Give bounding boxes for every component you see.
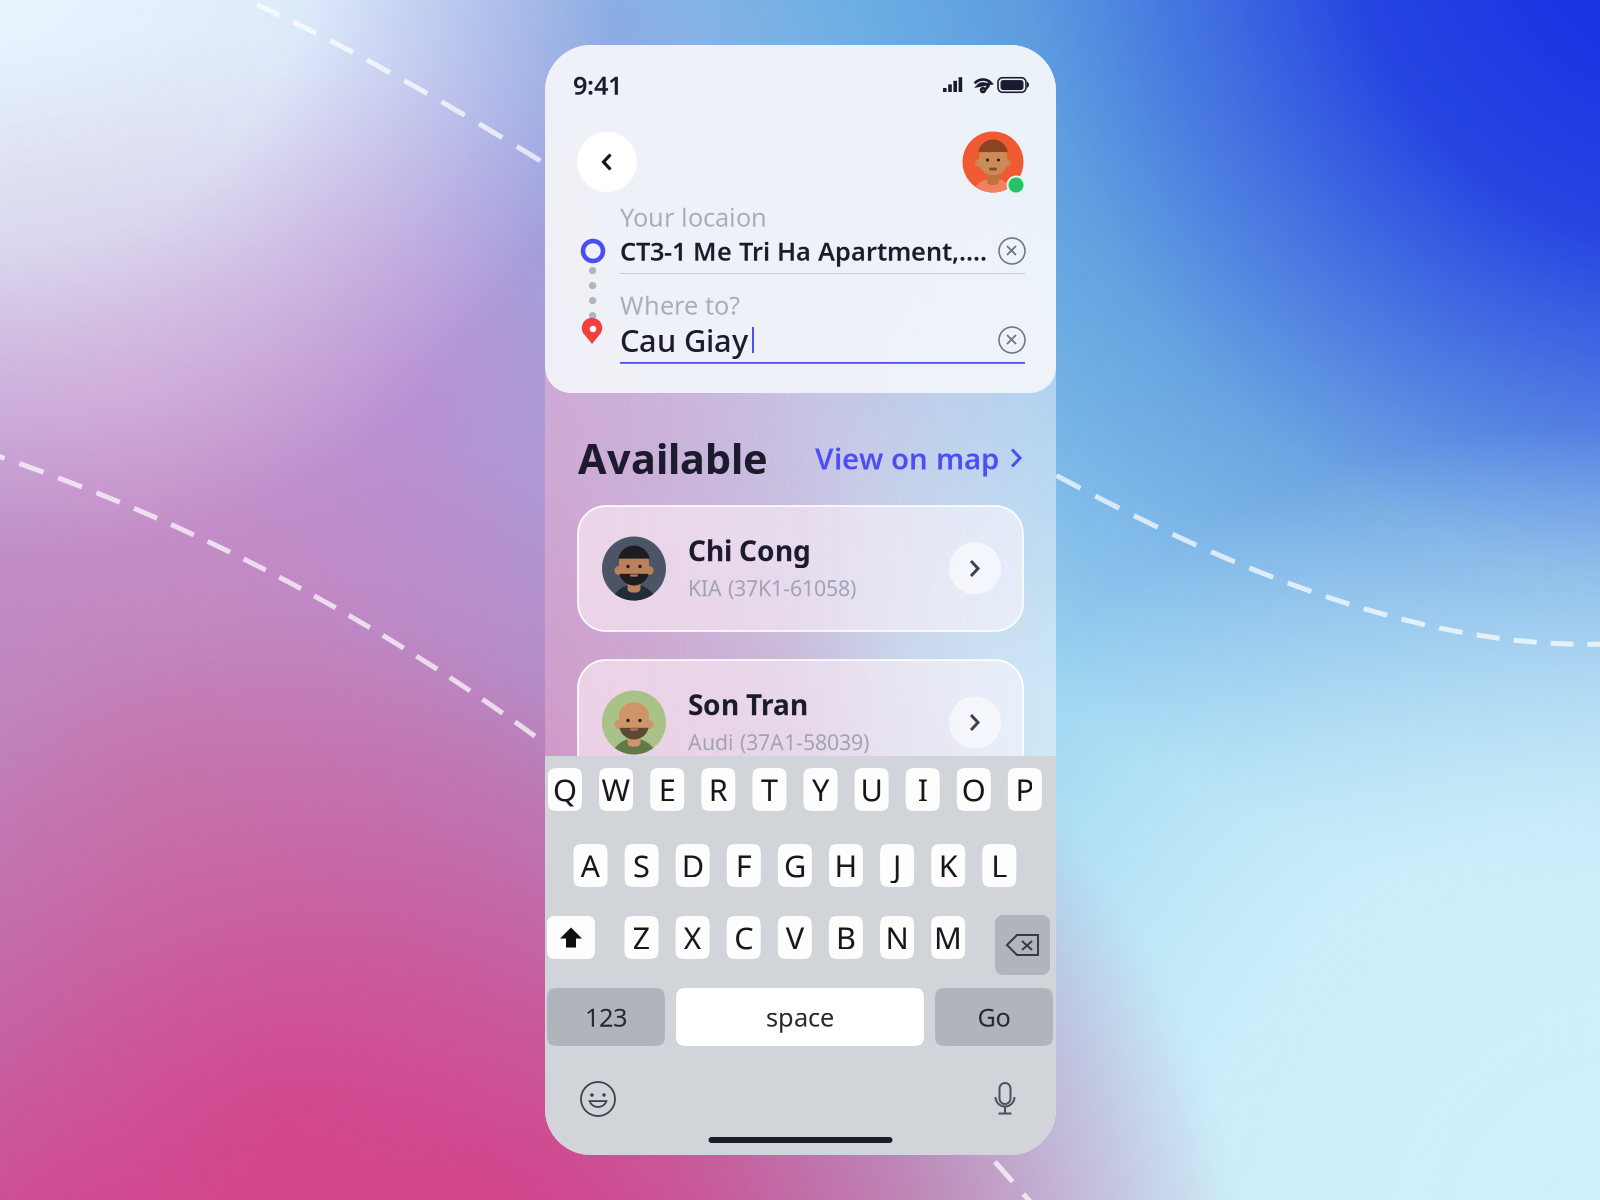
button[interactable]: T	[752, 768, 786, 811]
button[interactable]: U	[855, 768, 889, 811]
button[interactable]: L	[982, 844, 1016, 887]
staticText: 9:41	[573, 68, 622, 102]
button[interactable]: Son Tran	[578, 660, 1023, 785]
button[interactable]: D	[676, 844, 710, 887]
staticText: P	[1015, 769, 1034, 810]
button[interactable]: W	[599, 768, 633, 811]
staticText: Go	[977, 1000, 1010, 1034]
staticText: W	[602, 769, 631, 810]
button[interactable]: V	[778, 916, 812, 959]
button[interactable]: B	[829, 916, 863, 959]
staticText: Son Tran	[688, 686, 808, 723]
button[interactable]: I	[906, 768, 940, 811]
staticText: O	[962, 769, 986, 810]
staticText: N	[885, 917, 908, 958]
staticText: CT3-1 Me Tri Ha Apartment,....	[620, 234, 987, 268]
staticText: View on map	[815, 438, 999, 477]
staticText: C	[734, 917, 753, 958]
staticText: D	[682, 845, 704, 886]
staticText: A	[580, 845, 600, 886]
staticText: Y	[812, 769, 829, 810]
button[interactable]: H	[829, 844, 863, 887]
button[interactable]: 123	[547, 988, 665, 1046]
button[interactable]: S	[625, 844, 659, 887]
staticText: F	[736, 845, 752, 886]
button[interactable]: Shift	[547, 916, 595, 959]
button[interactable]: Z	[624, 916, 658, 959]
button[interactable]: E	[650, 768, 684, 811]
staticText: Your locaion	[620, 200, 767, 234]
button[interactable]: Delete	[995, 915, 1050, 975]
button[interactable]: Y	[803, 768, 837, 811]
button[interactable]: A	[573, 844, 607, 887]
button[interactable]: Profile	[962, 131, 1024, 193]
button[interactable]: K	[931, 844, 965, 887]
button[interactable]: Emoji	[581, 1082, 615, 1116]
staticText: Available	[578, 431, 768, 485]
button[interactable]: C	[727, 916, 761, 959]
staticText: R	[709, 769, 728, 810]
button[interactable]: space	[676, 988, 924, 1046]
staticText: Q	[553, 769, 577, 810]
staticText: I	[918, 769, 928, 810]
staticText: Z	[632, 917, 650, 958]
button[interactable]: Clear destination	[999, 327, 1025, 353]
button[interactable]: F	[727, 844, 761, 887]
staticText: Chi Cong	[688, 532, 811, 569]
button[interactable]: G	[778, 844, 812, 887]
staticText: Where to?	[620, 288, 740, 322]
staticText: T	[761, 769, 778, 810]
staticText: 123	[585, 1000, 627, 1034]
staticText: S	[633, 845, 650, 886]
button[interactable]: X	[676, 916, 710, 959]
staticText: Cau Giay	[620, 320, 748, 360]
staticText: J	[893, 845, 901, 886]
button[interactable]: Clear origin	[999, 238, 1025, 264]
staticText: G	[784, 845, 806, 886]
button[interactable]: N	[880, 916, 914, 959]
button[interactable]: J	[880, 844, 914, 887]
staticText: space	[766, 1000, 834, 1034]
staticText: K	[939, 845, 958, 886]
button[interactable]: O	[957, 768, 991, 811]
button[interactable]: P	[1008, 768, 1042, 811]
staticText: H	[834, 845, 857, 886]
button[interactable]: Chi Cong	[578, 506, 1023, 631]
button[interactable]: Dictate	[993, 1082, 1017, 1116]
staticText: V	[786, 917, 804, 958]
staticText: U	[861, 769, 883, 810]
staticText: B	[836, 917, 856, 958]
button[interactable]: R	[701, 768, 735, 811]
staticText: Audi (37A1-58039)	[688, 728, 869, 756]
button[interactable]: Back	[577, 132, 637, 192]
staticText: L	[991, 845, 1007, 886]
button[interactable]: Go	[935, 988, 1053, 1046]
staticText: X	[684, 917, 702, 958]
button[interactable]: M	[931, 916, 965, 959]
staticText: KIA (37K1-61058)	[688, 574, 856, 602]
staticText: M	[934, 917, 962, 958]
staticText: E	[659, 769, 676, 810]
button[interactable]: Q	[548, 768, 582, 811]
button[interactable]: View on map	[815, 438, 1023, 477]
